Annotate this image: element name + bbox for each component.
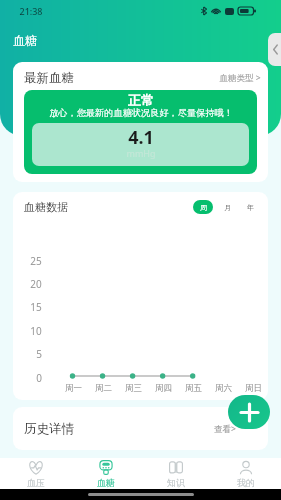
staticText: 4.1	[128, 125, 154, 144]
button[interactable]: 我的	[211, 458, 281, 489]
staticText: 血压	[27, 477, 45, 488]
button[interactable]: 血糖	[71, 458, 141, 489]
button[interactable]: Open side panel	[268, 33, 281, 66]
staticText: 放心，您最新的血糖状况良好，尽量保持哦！	[49, 107, 233, 119]
button[interactable]: 血糖类型 >	[213, 70, 261, 86]
staticText: 历史详情	[24, 421, 74, 437]
staticText: 最新血糖	[24, 70, 74, 86]
staticText: 查看>	[214, 423, 236, 435]
staticText: 周六	[215, 383, 232, 394]
staticText: 21:38	[19, 5, 43, 17]
staticText: 10	[30, 324, 42, 337]
staticText: 血糖数据	[24, 200, 68, 214]
staticText: 正常	[128, 92, 154, 106]
staticText: 年	[247, 203, 254, 212]
staticText: 15	[30, 300, 42, 313]
button[interactable]: 年	[243, 200, 257, 214]
staticText: 20	[30, 277, 42, 290]
button[interactable]: Add blood sugar record	[228, 395, 270, 429]
button[interactable]: 知识	[141, 458, 211, 489]
staticText: 25	[30, 254, 42, 267]
staticText: 月	[224, 203, 231, 212]
staticText: 周	[200, 203, 207, 212]
staticText: 血糖类型 >	[219, 72, 261, 84]
staticText: 周一	[65, 383, 82, 394]
button[interactable]: 月	[220, 200, 234, 214]
staticText: mmHg	[126, 147, 156, 159]
staticText: 血糖	[13, 33, 37, 48]
staticText: 周二	[95, 383, 112, 394]
staticText: 周三	[125, 383, 142, 394]
button[interactable]: 历史详情	[13, 407, 268, 450]
staticText: 周四	[155, 383, 172, 394]
staticText: 5	[36, 347, 42, 360]
staticText: 0	[36, 371, 42, 384]
staticText: 周五	[185, 383, 202, 394]
button[interactable]: 周	[193, 200, 213, 214]
staticText: 我的	[237, 477, 255, 488]
staticText: 知识	[167, 477, 185, 488]
staticText: 血糖	[97, 477, 115, 488]
staticText: 周日	[245, 383, 262, 394]
button[interactable]: 血压	[0, 458, 71, 489]
